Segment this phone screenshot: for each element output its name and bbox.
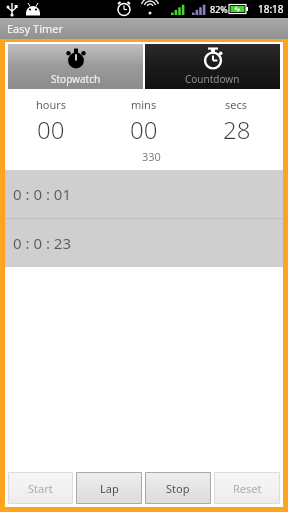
button[interactable]: mins [97,97,190,146]
staticText: Stop [166,481,190,496]
button[interactable]: Stopwatch [8,44,143,89]
button[interactable]: 0 : 0 : 01 [5,170,283,218]
staticText: 82% [210,3,228,15]
staticText: 00 [37,113,65,146]
staticText: 00 [130,113,158,146]
staticText: 28 [223,113,251,146]
staticText: 0 : 0 : 23 [13,233,71,253]
staticText: mins [131,97,157,112]
button[interactable]: Lap [77,473,141,503]
button[interactable]: Reset [215,473,279,503]
button[interactable]: 0 : 0 : 23 [5,219,283,267]
button[interactable]: Start [9,473,72,503]
button[interactable]: Countdown [145,44,280,89]
button[interactable]: hours [5,97,97,146]
staticText: Easy Timer [7,21,64,36]
staticText: 0 : 0 : 01 [13,184,71,204]
button[interactable]: Stop [146,473,210,503]
staticText: hours [36,97,67,112]
staticText: secs [225,97,248,112]
staticText: Start [28,481,53,496]
button[interactable]: secs [190,97,283,146]
staticText: Countdown [185,72,240,86]
staticText: Lap [100,481,119,496]
staticText: Reset [233,481,262,496]
staticText: 18:18 [258,2,284,16]
staticText: 330 [142,149,161,164]
staticText: Stopwatch [51,72,101,86]
